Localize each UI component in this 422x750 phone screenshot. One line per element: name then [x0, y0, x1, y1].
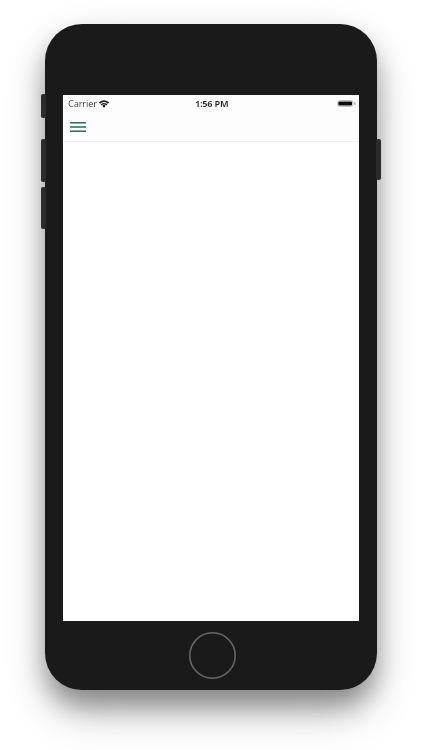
button[interactable]: Open navigation menu — [63, 114, 93, 140]
staticText: 1:56 PM — [195, 97, 229, 110]
button[interactable]: Home — [189, 632, 236, 679]
staticText: Carrier — [68, 97, 97, 110]
